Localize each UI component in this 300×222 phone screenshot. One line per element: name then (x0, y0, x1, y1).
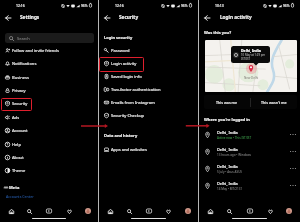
staticText: 14 May • MT/2131 (217, 187, 243, 191)
button[interactable]: Search (5, 33, 94, 43)
staticText: Delhi, India (217, 164, 238, 169)
staticText: Ads (12, 115, 20, 121)
staticText: Delhi, India (217, 181, 238, 186)
staticText: 5 July • Asus ASUS (217, 170, 242, 174)
button[interactable]: Activity (63, 205, 75, 217)
button[interactable]: More options (288, 130, 297, 139)
staticText: Settings (20, 14, 40, 20)
button[interactable]: Theme (0, 164, 98, 177)
staticText: Help (12, 142, 21, 148)
button[interactable]: Delhi, India (199, 177, 300, 194)
button[interactable]: Activity (162, 205, 174, 217)
staticText: Search (17, 36, 30, 41)
staticText: 96% (181, 4, 188, 8)
staticText: Theme (12, 168, 26, 174)
staticText: Apps and websites (111, 147, 147, 153)
button[interactable]: Accounts Center (6, 194, 34, 199)
staticText: Login activity (220, 14, 252, 20)
staticText: Emails from Instagram (111, 100, 155, 106)
staticText: Saved login info (111, 74, 142, 80)
button[interactable]: Reels (43, 205, 55, 217)
button[interactable]: More options (288, 164, 297, 173)
button[interactable]: Reels (143, 205, 155, 217)
staticText: 13 hours ago • Windows (217, 153, 252, 157)
button[interactable]: Apps and websites (99, 143, 198, 156)
staticText: 10:13 (215, 3, 224, 8)
staticText: Login activity (111, 61, 137, 67)
staticText: Two-factor authentication (111, 87, 161, 93)
button[interactable]: Search (123, 205, 135, 217)
staticText: Login security (104, 35, 133, 40)
button[interactable]: Search (223, 205, 235, 217)
button[interactable]: Help (0, 138, 98, 151)
button[interactable]: Search (23, 205, 35, 217)
button[interactable]: Activity (264, 205, 276, 217)
staticText: Active now • This IST/IST (217, 136, 252, 140)
button[interactable]: Follow and invite friends (0, 44, 98, 57)
staticText: Business (12, 75, 29, 81)
button[interactable]: Back (2, 12, 13, 23)
button[interactable]: Security (0, 97, 98, 110)
staticText: 96% (81, 4, 88, 8)
staticText: Privacy (12, 88, 26, 94)
staticText: 12:16 (16, 3, 25, 8)
button[interactable]: Password (99, 44, 198, 57)
staticText: 96% (283, 4, 290, 8)
button[interactable]: Reels (244, 205, 256, 217)
staticText: Delhi, India (217, 147, 238, 152)
button[interactable]: About (0, 151, 98, 164)
button[interactable]: Delhi, India (199, 126, 300, 143)
staticText: Security (119, 14, 139, 20)
button[interactable]: Notifications (0, 57, 98, 70)
button[interactable]: This wasn't me (251, 95, 297, 109)
staticText: Delhi, India (217, 130, 238, 135)
staticText: This wasn't me (261, 100, 287, 105)
staticText: 12:16 (115, 3, 124, 8)
button[interactable]: Back (101, 12, 112, 23)
button[interactable]: This was me (204, 95, 250, 109)
staticText: Notifications (12, 61, 37, 67)
button[interactable]: Home (204, 205, 216, 217)
staticText: 10 May at 1:29 pm (241, 53, 266, 57)
button[interactable]: Login activity (99, 57, 198, 70)
button[interactable]: Profile (283, 205, 295, 217)
button[interactable]: Delhi, India (199, 160, 300, 177)
button[interactable]: Privacy (0, 84, 98, 97)
button[interactable]: Two-factor authentication (99, 83, 198, 96)
button[interactable]: Profile (182, 205, 194, 217)
staticText: Security Checkup (111, 113, 145, 119)
button[interactable]: Security Checkup (99, 109, 198, 122)
button[interactable]: More options (288, 147, 297, 156)
button[interactable]: Back (201, 12, 212, 23)
staticText: Data and history (104, 133, 138, 138)
staticText: New Delhi (244, 76, 259, 80)
button[interactable]: Emails from Instagram (99, 96, 198, 109)
staticText: Meta (9, 185, 20, 190)
staticText: IST/IST (241, 57, 251, 61)
staticText: Password (111, 48, 130, 54)
button[interactable]: Home (5, 205, 17, 217)
staticText: Where you're logged in (204, 117, 250, 122)
staticText: Follow and invite friends (12, 48, 59, 54)
button[interactable]: Ads (0, 111, 98, 124)
staticText: Security (12, 101, 28, 107)
button[interactable]: Saved login info (99, 70, 198, 83)
staticText: Was this you? (204, 30, 232, 35)
button[interactable]: Home (104, 205, 116, 217)
button[interactable]: New Delhi (205, 40, 297, 92)
staticText: About (12, 155, 24, 161)
button[interactable]: Profile (82, 205, 94, 217)
button[interactable]: Delhi, India (199, 143, 300, 160)
button[interactable]: Business (0, 71, 98, 84)
button[interactable]: Account (0, 124, 98, 137)
staticText: Delhi, India (241, 48, 261, 53)
button[interactable]: More options (288, 181, 297, 190)
staticText: This was me (216, 100, 238, 105)
staticText: Account (12, 128, 28, 134)
